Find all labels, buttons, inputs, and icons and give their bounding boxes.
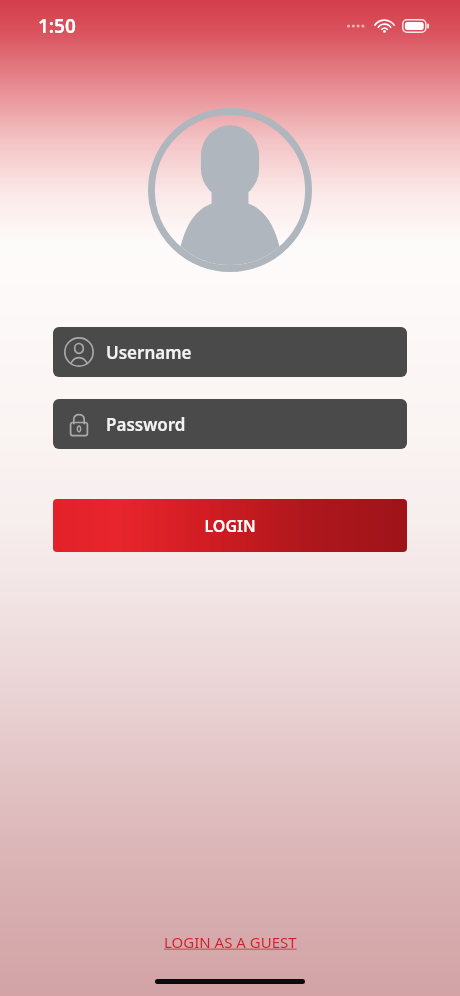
button[interactable]: LOGIN [53, 499, 407, 552]
button[interactable]: Username [53, 327, 407, 377]
staticText: Password [106, 413, 186, 436]
staticText: LOGIN [204, 515, 256, 537]
other: Profile avatar [148, 108, 312, 272]
staticText: LOGIN AS A GUEST [164, 932, 297, 952]
staticText: Username [106, 341, 192, 364]
button[interactable]: Password [53, 399, 407, 449]
staticText: 1:50 [38, 13, 76, 39]
button[interactable]: LOGIN AS A GUEST [150, 926, 311, 958]
